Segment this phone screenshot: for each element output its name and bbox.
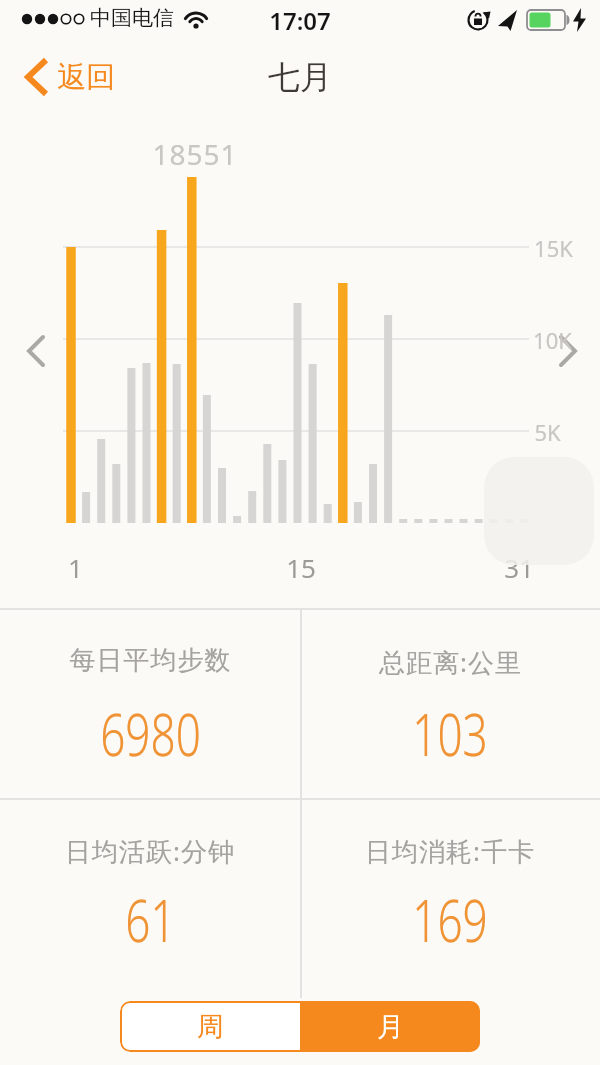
- staticText: 返回: [57, 59, 115, 96]
- staticText: 中国电信: [90, 5, 174, 31]
- staticText: 每日平均步数: [69, 644, 231, 677]
- staticText: 31: [504, 550, 534, 585]
- button[interactable]: 月: [300, 1001, 480, 1052]
- staticText: 日均活跃:分钟: [65, 833, 235, 869]
- staticText: 103: [412, 694, 488, 773]
- staticText: 6980: [100, 694, 201, 773]
- staticText: 5K: [534, 417, 561, 447]
- staticText: 10K: [533, 325, 572, 355]
- staticText: 1: [68, 550, 83, 585]
- staticText: 61: [125, 880, 176, 959]
- button[interactable]: 返回: [16, 50, 146, 108]
- staticText: 月: [377, 1010, 404, 1044]
- button[interactable]: 周: [120, 1001, 300, 1052]
- staticText: 七月: [268, 57, 332, 97]
- staticText: 周: [197, 1010, 224, 1044]
- staticText: 15: [286, 550, 316, 585]
- staticText: 169: [412, 880, 488, 959]
- staticText: 日均消耗:千卡: [365, 833, 535, 869]
- staticText: 总距离:公里: [379, 644, 522, 680]
- staticText: 18551: [152, 135, 238, 173]
- staticText: 15K: [534, 233, 573, 263]
- staticText: 17:07: [269, 4, 331, 37]
